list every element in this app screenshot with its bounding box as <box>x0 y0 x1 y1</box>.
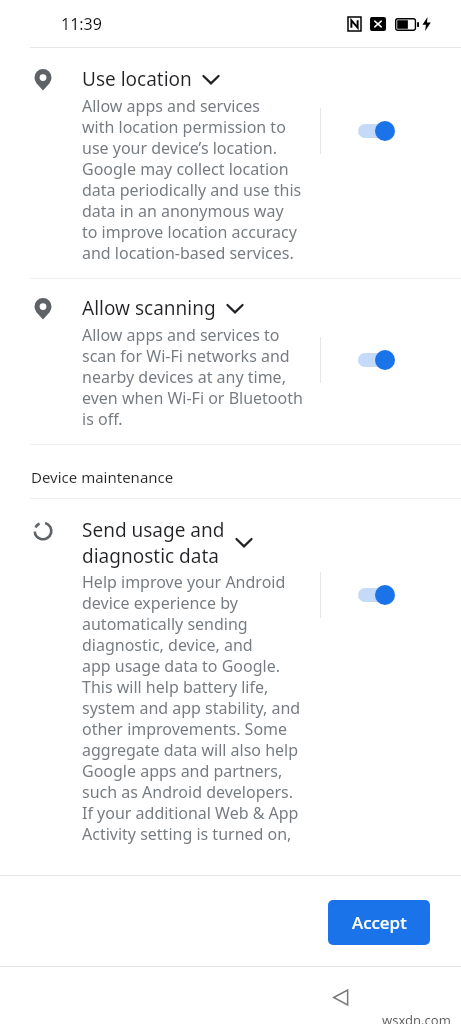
staticText: Allow apps and services with location pe… <box>82 95 302 264</box>
button[interactable]: Use location <box>0 48 461 278</box>
staticText: wsxdn.com <box>382 1011 451 1024</box>
button[interactable]: Expand <box>226 303 244 314</box>
staticText: Allow apps and services to scan for Wi-F… <box>82 324 303 430</box>
staticText: Send usage and diagnostic data <box>82 517 225 568</box>
button[interactable]: Toggle <box>349 578 401 612</box>
button[interactable]: Toggle <box>349 114 401 148</box>
button[interactable]: Send usage and diagnostic data <box>0 499 461 859</box>
button[interactable]: Expand <box>235 537 253 548</box>
button[interactable]: Allow scanning <box>0 279 461 444</box>
staticText: Help improve your Android device experie… <box>82 571 301 845</box>
staticText: 11:39 <box>61 13 102 35</box>
button[interactable]: Expand <box>202 74 220 85</box>
button[interactable]: Accept <box>328 900 430 945</box>
staticText: Device maintenance <box>31 467 174 487</box>
staticText: Use location <box>82 66 192 92</box>
staticText: Allow scanning <box>82 295 216 321</box>
button[interactable]: Toggle <box>349 343 401 377</box>
button[interactable]: Back <box>327 984 353 1010</box>
staticText: Accept <box>352 911 407 934</box>
